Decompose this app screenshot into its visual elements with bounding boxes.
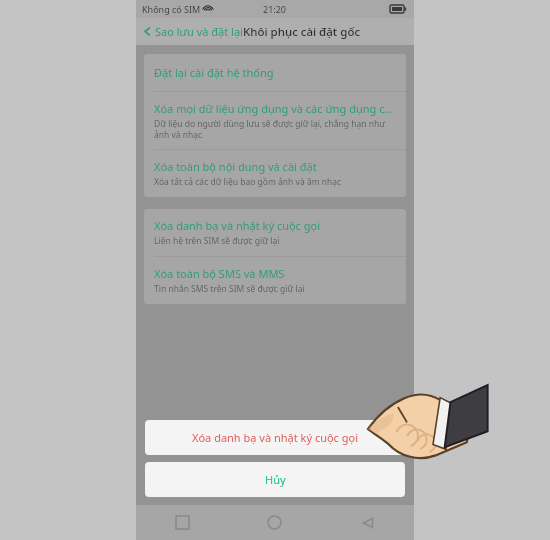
button[interactable]: Xóa toàn bộ SMS và MMS [144, 257, 406, 304]
staticText: 21:20 [263, 3, 287, 15]
staticText: Hủy [265, 472, 286, 487]
button[interactable]: Xóa mọi dữ liệu ứng dụng và các ứng dụng… [144, 92, 406, 149]
staticText: Xóa tất cả các dữ liệu bao gồm ảnh và âm… [154, 176, 342, 188]
button[interactable]: Home [228, 505, 321, 540]
button[interactable]: Hủy [145, 462, 405, 497]
staticText: Dữ liệu do người dùng lưu sẽ được giữ lạ… [154, 118, 396, 140]
other: Back [142, 26, 153, 37]
staticText: Sao lưu và đặt lại [155, 24, 243, 39]
staticText: Khôi phục cài đặt gốc [243, 24, 361, 40]
staticText: Xóa danh bạ và nhật ký cuộc gọi [154, 218, 321, 233]
staticText: Đặt lại cài đặt hệ thống [154, 65, 274, 80]
staticText: Xóa toàn bộ SMS và MMS [154, 266, 285, 281]
staticText: Không có SIM [142, 3, 201, 15]
button[interactable]: Back [321, 505, 414, 540]
staticText: Liên hệ trên SIM sẽ được giữ lại [154, 235, 280, 247]
button[interactable]: Back [136, 22, 247, 41]
staticText: Tin nhắn SMS trên SIM sẽ được giữ lại [154, 283, 305, 295]
button[interactable]: Xóa danh bạ và nhật ký cuộc gọi [144, 209, 406, 256]
button[interactable]: Recent apps [136, 505, 228, 540]
button[interactable]: Xóa toàn bộ nội dung và cài đặt [144, 150, 406, 197]
staticText: Xóa mọi dữ liệu ứng dụng và các ứng dụng… [154, 101, 394, 116]
staticText: Xóa danh bạ và nhật ký cuộc gọi [192, 430, 359, 445]
button[interactable]: Đặt lại cài đặt hệ thống [144, 54, 406, 91]
button[interactable]: Xóa danh bạ và nhật ký cuộc gọi [145, 420, 405, 455]
staticText: Xóa toàn bộ nội dung và cài đặt [154, 159, 317, 174]
